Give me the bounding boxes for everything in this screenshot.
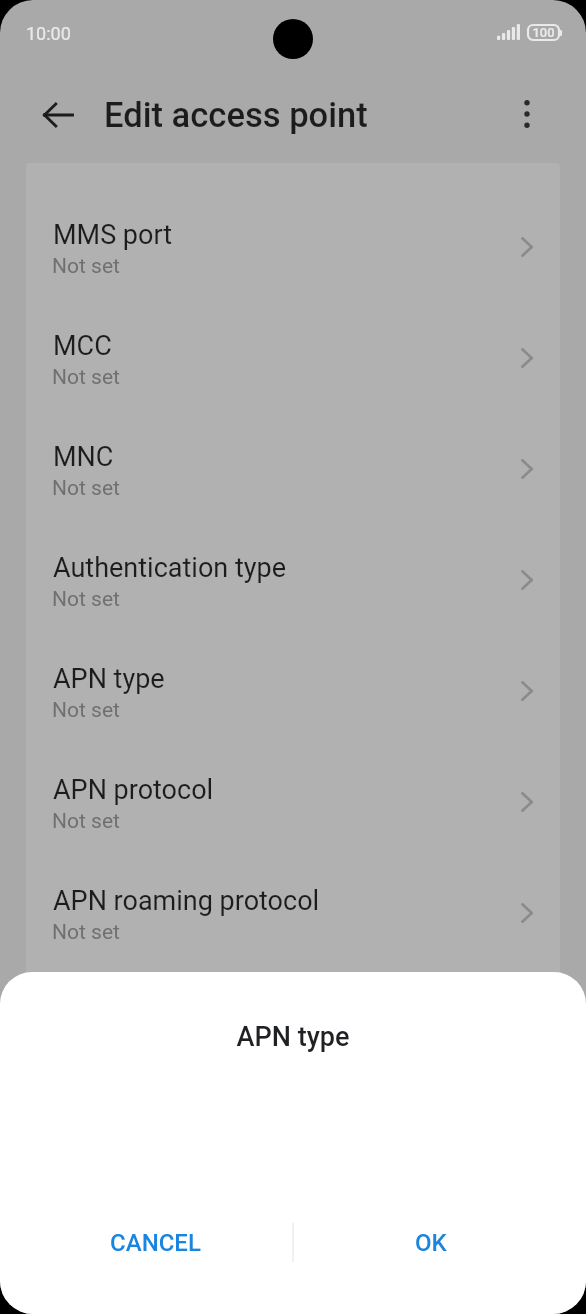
button[interactable]: Authentication type: [26, 519, 560, 629]
staticText: MMS port: [53, 219, 173, 251]
button[interactable]: MCC: [26, 297, 560, 407]
button[interactable]: More options: [503, 90, 551, 138]
staticText: MNC: [53, 441, 114, 473]
staticText: Edit access point: [104, 95, 368, 135]
staticText: Not set: [52, 698, 120, 723]
button[interactable]: APN type: [26, 630, 560, 740]
staticText: Not set: [52, 254, 120, 279]
staticText: Not set: [52, 920, 120, 945]
staticText: CANCEL: [110, 1229, 201, 1257]
button[interactable]: CANCEL: [18, 1212, 292, 1274]
staticText: MCC: [53, 330, 112, 362]
staticText: Authentication type: [53, 552, 286, 584]
staticText: Not set: [52, 476, 120, 501]
button[interactable]: APN protocol: [26, 741, 560, 851]
button[interactable]: MMS port: [26, 186, 560, 296]
staticText: APN protocol: [53, 774, 214, 806]
button[interactable]: Back: [34, 91, 82, 139]
staticText: Not set: [52, 365, 120, 390]
staticText: Not set: [52, 587, 120, 612]
staticText: APN type: [0, 1021, 586, 1053]
staticText: OK: [415, 1229, 447, 1257]
button[interactable]: MNC: [26, 408, 560, 518]
staticText: Not set: [52, 809, 120, 834]
button[interactable]: APN roaming protocol: [26, 852, 560, 962]
staticText: APN roaming protocol: [53, 885, 320, 917]
staticText: 10:00: [26, 23, 71, 44]
staticText: 100: [531, 25, 556, 40]
button[interactable]: OK: [294, 1212, 568, 1274]
staticText: APN type: [53, 663, 165, 695]
